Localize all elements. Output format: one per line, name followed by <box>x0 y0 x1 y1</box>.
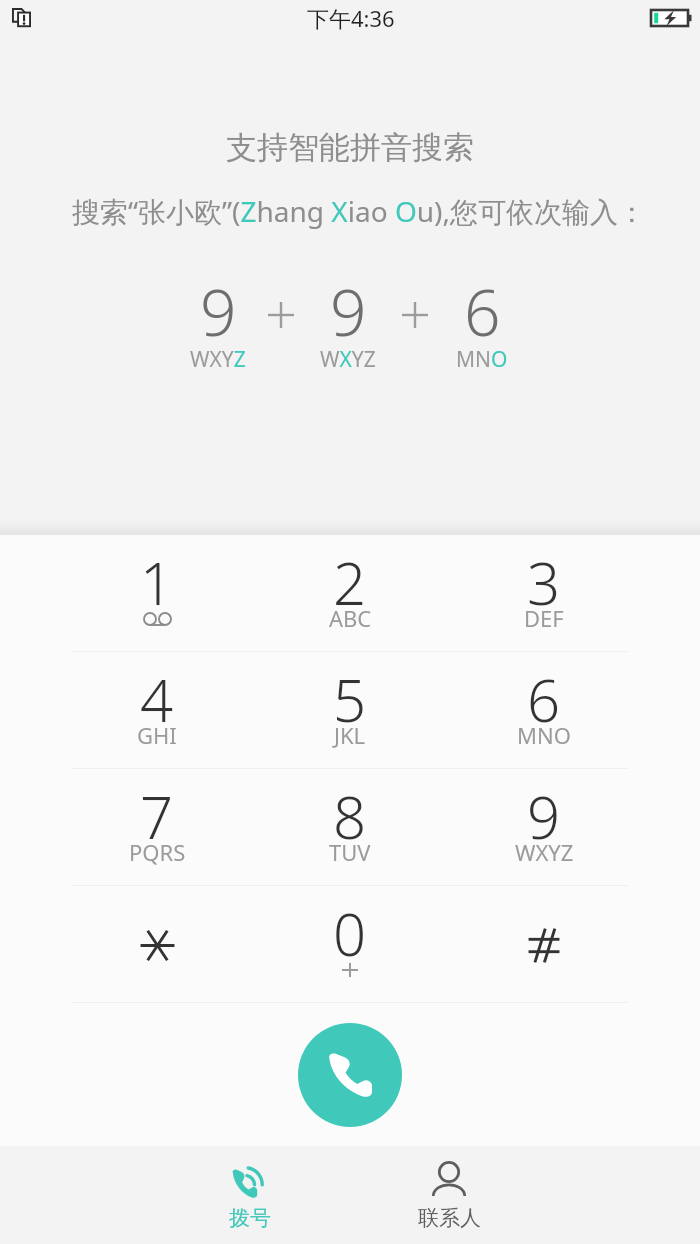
staticText: 0 <box>333 894 367 973</box>
staticText: 支持智能拼音搜索 <box>226 128 474 167</box>
staticText: TUV <box>329 837 371 867</box>
staticText: 搜索“张小欧”(Zhang Xiao Ou),您可依次输入： <box>72 192 646 230</box>
staticText: 8 <box>333 777 367 856</box>
staticText: MNO <box>456 345 508 374</box>
staticText: 2 <box>333 543 367 622</box>
button[interactable]: 7 <box>67 769 247 885</box>
staticText: 1 <box>140 543 174 622</box>
staticText: 9 <box>200 268 237 355</box>
staticText: 6 <box>464 268 501 355</box>
button[interactable]: 联系人 <box>369 1146 529 1244</box>
staticText: 6 <box>527 660 561 739</box>
staticText: 3 <box>527 543 561 622</box>
button[interactable]: 1 <box>67 535 247 651</box>
staticText: GHI <box>137 720 177 750</box>
staticText: 9 <box>527 777 561 856</box>
staticText: WXYZ <box>190 345 246 374</box>
staticText: 4 <box>140 660 174 739</box>
button[interactable]: 3 <box>454 535 634 651</box>
button[interactable]: 2 <box>260 535 440 651</box>
staticText: DEF <box>524 603 564 633</box>
staticText: 联系人 <box>418 1205 481 1231</box>
button[interactable]: 8 <box>260 769 440 885</box>
staticText: 7 <box>140 777 174 856</box>
staticText: 9 <box>330 268 367 355</box>
button[interactable]: 6 <box>454 652 634 768</box>
button[interactable]: 0 <box>260 886 440 1002</box>
staticText: WXYZ <box>515 837 574 867</box>
staticText: 拨号 <box>229 1205 271 1231</box>
staticText: JKL <box>334 720 366 750</box>
staticText: PQRS <box>129 837 186 867</box>
button[interactable]: 5 <box>260 652 440 768</box>
button[interactable]: Call <box>298 1023 402 1127</box>
button[interactable]: 9 <box>454 769 634 885</box>
button[interactable]: Pound <box>454 886 634 1002</box>
button[interactable]: 拨号 <box>170 1146 330 1244</box>
button[interactable]: 4 <box>67 652 247 768</box>
staticText: WXYZ <box>320 345 376 374</box>
staticText: 下午4:36 <box>307 3 395 33</box>
button[interactable]: Star <box>67 886 247 1002</box>
staticText: ABC <box>329 603 372 633</box>
staticText: MNO <box>517 720 571 750</box>
staticText: 5 <box>333 660 367 739</box>
